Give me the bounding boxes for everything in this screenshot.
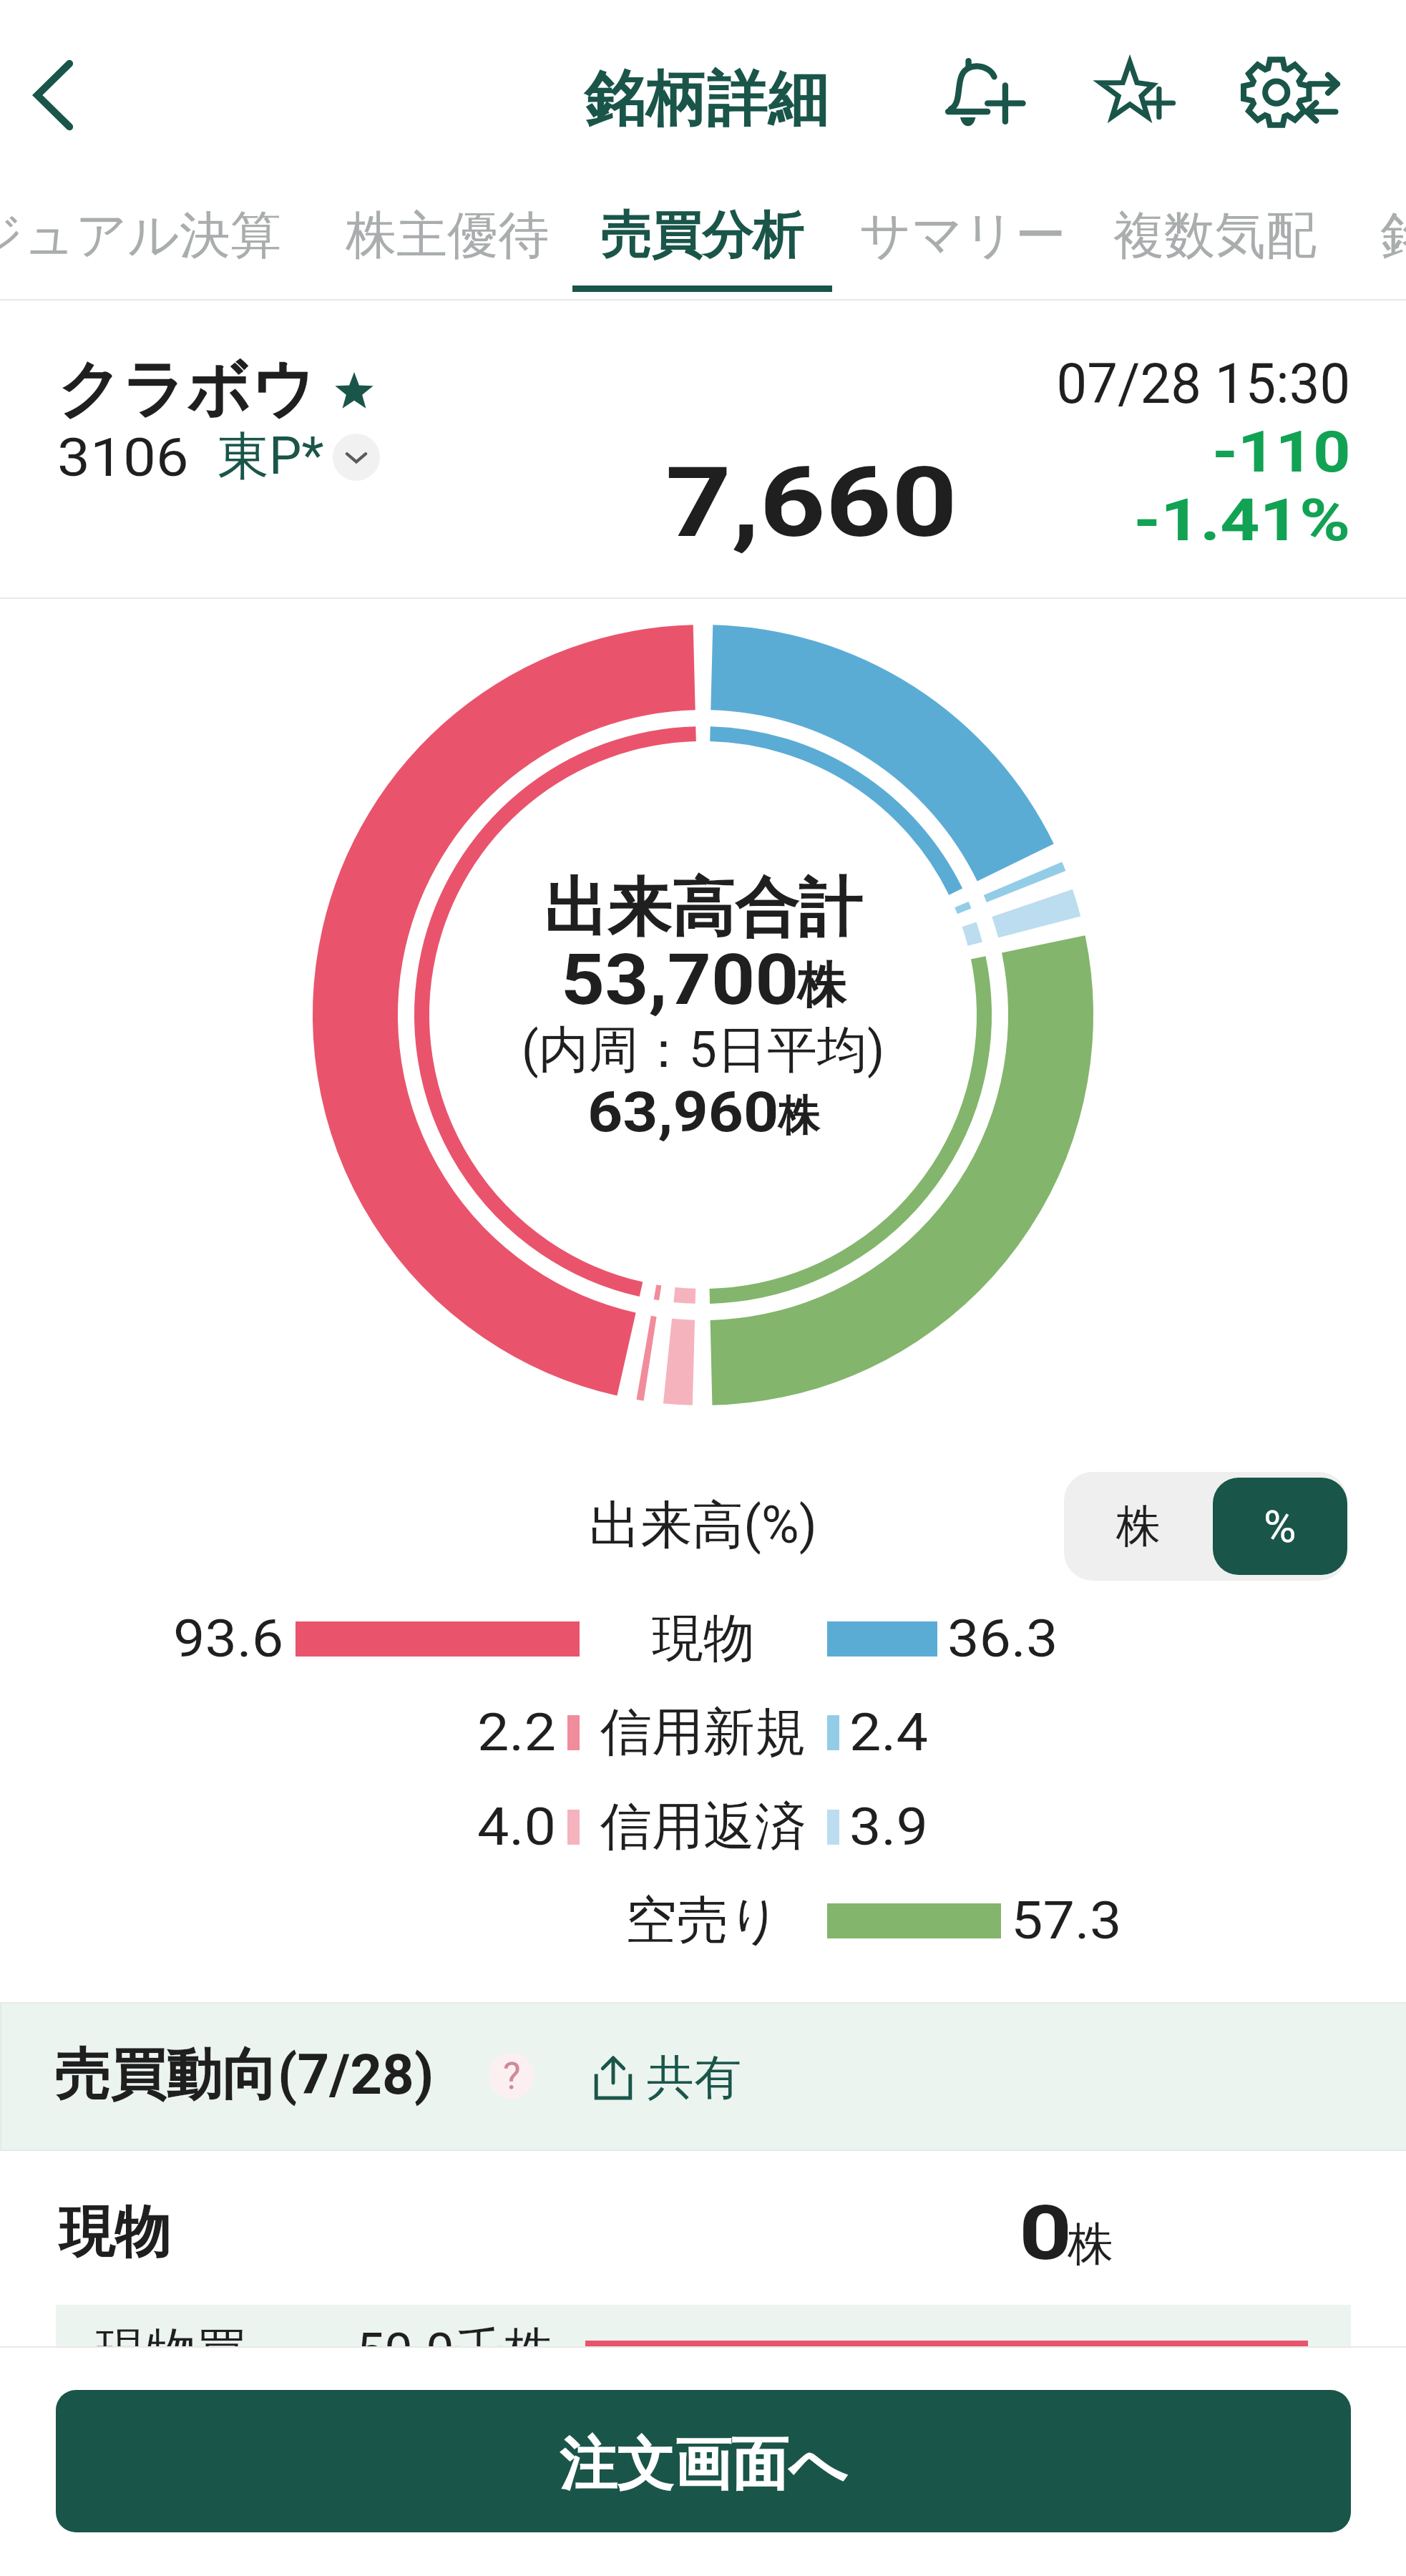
button[interactable]: Stock settings xyxy=(1240,44,1339,143)
staticText: (内周：5日平均) xyxy=(0,1019,1406,1082)
button[interactable]: 複数気配 xyxy=(1043,182,1387,301)
button[interactable]: 株主優待 xyxy=(275,182,619,301)
staticText: 売買動向(7/28) xyxy=(54,2040,434,2110)
staticText: サマリー xyxy=(859,204,1066,268)
staticText: 東P* xyxy=(218,424,324,489)
staticText: 銘柄詳細 xyxy=(584,62,829,137)
staticText: 07/28 15:30 xyxy=(1057,351,1351,416)
staticText: 0 xyxy=(1019,2189,1072,2278)
staticText: 53,700 xyxy=(561,939,800,1021)
button[interactable]: 共有 xyxy=(588,2048,741,2107)
staticText: 空売り xyxy=(625,1888,781,1953)
staticText: 株 xyxy=(1116,1498,1161,1554)
staticText: 出来高合計 xyxy=(0,868,1406,948)
staticText: 現物買 xyxy=(96,2321,246,2384)
button[interactable]: Change market xyxy=(333,434,380,481)
staticText: クラボウ xyxy=(57,350,316,429)
staticText: 信用返済 xyxy=(600,1795,806,1860)
staticText: 93.6 xyxy=(173,1609,284,1669)
button[interactable]: 銘柄 xyxy=(1259,182,1406,301)
button[interactable]: 注文画面へ xyxy=(56,2390,1351,2532)
staticText: 銘柄 xyxy=(1380,204,1406,268)
staticText: 注文画面へ xyxy=(560,2429,847,2501)
button[interactable]: Add price alert xyxy=(942,57,1025,140)
button[interactable]: Help xyxy=(489,2053,534,2099)
staticText: 株 xyxy=(1068,2215,1113,2273)
staticText: 株 xyxy=(797,955,846,1017)
staticText: -110 xyxy=(1212,419,1351,486)
staticText: 50.0千株 xyxy=(356,2321,555,2384)
button[interactable]: Add to watchlist xyxy=(1105,60,1174,129)
staticText: -1.41% xyxy=(1134,487,1351,555)
staticText: 信用新規 xyxy=(600,1700,806,1765)
button[interactable]: 株 xyxy=(1064,1472,1213,1581)
button[interactable]: 売買分析 xyxy=(530,182,874,301)
staticText: 36.3 xyxy=(947,1609,1058,1669)
staticText: 複数気配 xyxy=(1113,204,1317,268)
staticText: 株 xyxy=(778,1090,819,1142)
staticText: 2.4 xyxy=(849,1702,928,1762)
staticText: 7,660 xyxy=(665,447,958,560)
staticText: 63,960 xyxy=(587,1080,779,1145)
staticText: % xyxy=(1264,1501,1297,1553)
staticText: 4.0 xyxy=(477,1797,556,1857)
button[interactable]: ジュアル決算 xyxy=(0,182,298,301)
staticText: ? xyxy=(503,2054,521,2098)
staticText: 共有 xyxy=(647,2048,741,2107)
staticText: 現物 xyxy=(652,1606,755,1672)
staticText: 出来高(%) xyxy=(0,1493,1406,1558)
staticText: 3106 xyxy=(57,426,189,489)
staticText: 3.9 xyxy=(849,1797,928,1857)
staticText: 2.2 xyxy=(477,1702,556,1762)
staticText: ジュアル決算 xyxy=(0,204,281,268)
button[interactable]: % xyxy=(1213,1478,1347,1575)
button[interactable]: サマリー xyxy=(791,182,1134,301)
staticText: 57.3 xyxy=(1011,1890,1122,1951)
button[interactable]: Back xyxy=(6,48,100,142)
staticText: 売買分析 xyxy=(600,204,804,268)
staticText: 現物 xyxy=(59,2197,170,2268)
staticText: 株主優待 xyxy=(346,204,549,268)
